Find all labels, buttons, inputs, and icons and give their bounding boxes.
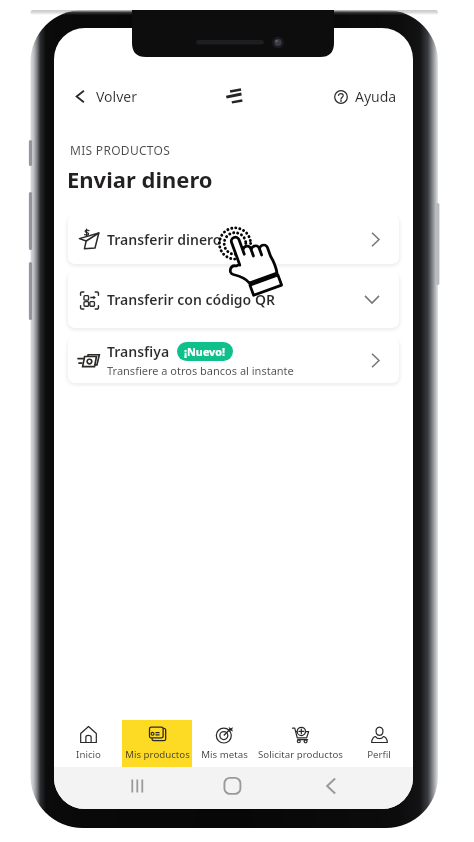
other: Logo (223, 85, 245, 107)
button[interactable]: Perfil (344, 720, 413, 767)
button[interactable]: Transfiya (68, 337, 399, 383)
staticText: Transfiya (107, 342, 170, 361)
staticText: Transferir dinero (107, 230, 222, 249)
staticText: Transfiere a otros bancos al instante (107, 363, 294, 378)
button[interactable]: Ayuda (330, 81, 401, 112)
other: Abrir (371, 353, 380, 368)
staticText: Enviar dinero (67, 164, 213, 194)
staticText: ¡Nuevo! (184, 344, 226, 359)
button[interactable]: Solicitar productos (257, 720, 344, 767)
staticText: Perfil (367, 748, 391, 761)
staticText: Solicitar productos (258, 748, 343, 761)
button[interactable]: Inicio (54, 720, 122, 767)
staticText: Mis productos (125, 748, 190, 761)
staticText: Ayuda (355, 87, 397, 106)
staticText: Transferir con código QR (107, 290, 275, 309)
staticText: Mis metas (201, 748, 248, 761)
staticText: MIS PRODUCTOS (70, 142, 171, 158)
staticText: Volver (96, 87, 137, 106)
staticText: Inicio (76, 748, 101, 761)
button[interactable]: Mis productos (122, 720, 192, 767)
other: Abrir (371, 232, 380, 247)
button[interactable]: Transferir dinero (68, 214, 399, 264)
button[interactable]: Transferir con código QR (68, 271, 399, 328)
button[interactable]: Mis metas (192, 720, 257, 767)
other: Expandir (364, 292, 380, 307)
button[interactable]: Volver (70, 81, 141, 112)
